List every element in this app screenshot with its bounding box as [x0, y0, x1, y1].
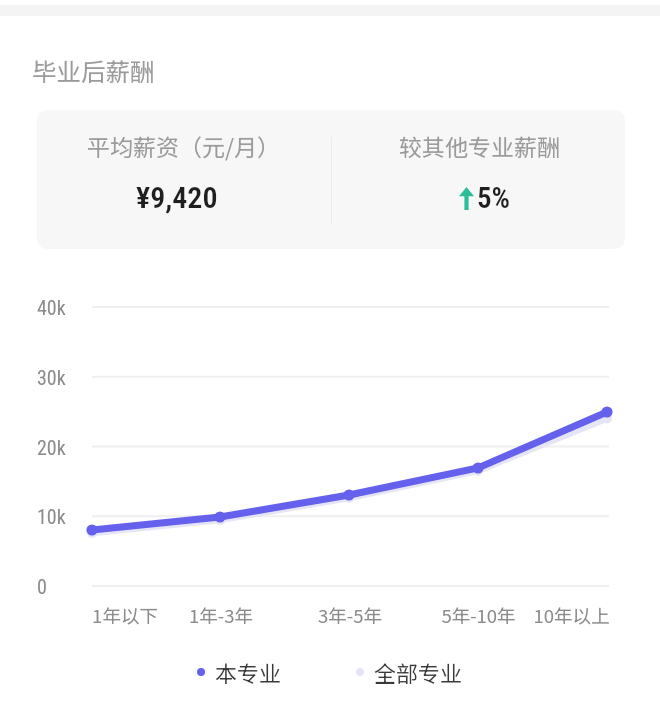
- staticText: ¥9,420: [136, 180, 218, 215]
- button[interactable]: 平均薪资（元/月）: [37, 110, 625, 249]
- staticText: 本专业: [215, 656, 282, 688]
- staticText: 5%: [477, 181, 511, 215]
- staticText: 30k: [37, 366, 66, 389]
- staticText: 平均薪资（元/月）: [87, 129, 281, 162]
- staticText: 全部专业: [374, 656, 463, 688]
- staticText: 40k: [37, 296, 66, 319]
- other: 薪酬走势折线图: [0, 0, 660, 709]
- staticText: 10年以上: [533, 602, 610, 629]
- other: 上升: [459, 187, 474, 210]
- button[interactable]: 本专业: [197, 656, 282, 688]
- staticText: 较其他专业薪酬: [399, 129, 560, 162]
- staticText: 0: [37, 575, 47, 598]
- staticText: 毕业后薪酬: [32, 53, 155, 88]
- button[interactable]: 全部专业: [356, 656, 463, 688]
- staticText: 1年以下: [92, 602, 158, 629]
- staticText: 10k: [37, 505, 66, 528]
- staticText: 5年-10年: [441, 602, 516, 629]
- staticText: 3年-5年: [318, 602, 382, 629]
- staticText: 20k: [37, 436, 66, 459]
- staticText: 1年-3年: [189, 602, 253, 629]
